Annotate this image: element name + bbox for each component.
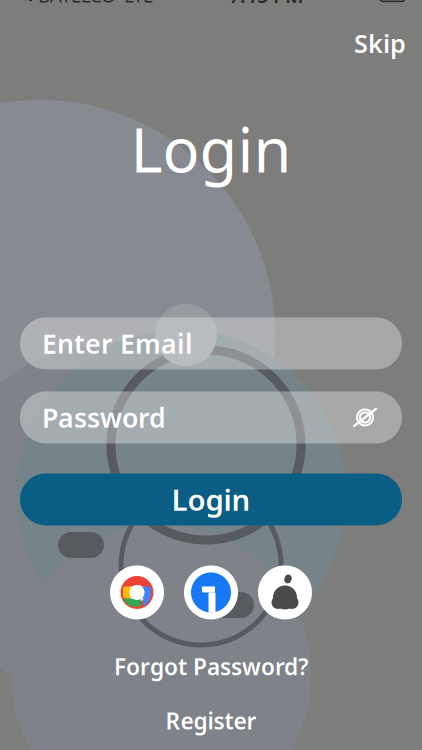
- button[interactable]: Skip: [338, 18, 422, 68]
- button[interactable]: Sign in with Google: [110, 565, 164, 619]
- staticText: Login: [130, 108, 291, 189]
- staticText: Login: [171, 480, 250, 519]
- staticText: BATELCO: [38, 0, 116, 8]
- staticText: 7:15 PM: [229, 0, 304, 9]
- button[interactable]: Login: [20, 473, 402, 525]
- button[interactable]: Register: [147, 701, 274, 740]
- staticText: Password: [42, 400, 166, 435]
- button[interactable]: Enter Email: [20, 317, 402, 369]
- button[interactable]: Sign in with Apple: [258, 565, 312, 619]
- button[interactable]: Forgot Password?: [100, 647, 322, 685]
- staticText: Skip: [354, 26, 406, 60]
- button[interactable]: Sign in with Facebook: [184, 565, 238, 619]
- staticText: LTE: [124, 0, 153, 8]
- staticText: Register: [165, 705, 256, 736]
- staticText: Enter Email: [42, 326, 193, 361]
- staticText: Forgot Password?: [114, 651, 308, 681]
- button[interactable]: Password: [20, 391, 402, 443]
